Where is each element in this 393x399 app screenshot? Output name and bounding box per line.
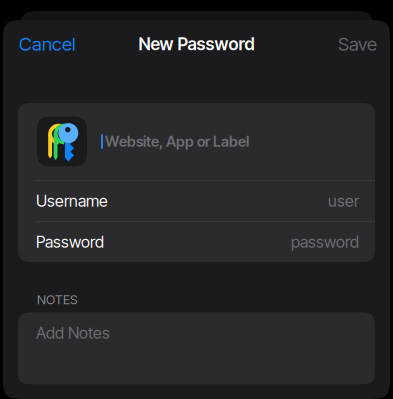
staticText: Username [36, 191, 108, 211]
staticText: Password [36, 232, 104, 252]
button[interactable]: Cancel [19, 33, 76, 55]
button[interactable]: Website, App or Label [18, 103, 375, 180]
staticText: password [291, 232, 359, 252]
button[interactable]: Add Notes [18, 312, 375, 384]
staticText: Cancel [19, 33, 76, 55]
button[interactable]: Save [338, 33, 377, 55]
button[interactable]: Username [18, 181, 375, 221]
staticText: NOTES [37, 292, 77, 307]
staticText: Website, App or Label [105, 133, 249, 150]
staticText: Add Notes [36, 323, 110, 343]
staticText: Save [338, 33, 377, 55]
button[interactable]: Password [18, 222, 375, 262]
staticText: user [328, 191, 359, 211]
staticText: New Password [138, 33, 254, 54]
